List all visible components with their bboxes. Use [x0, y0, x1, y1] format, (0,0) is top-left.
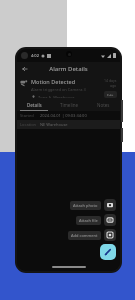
staticText: Location	[20, 122, 40, 127]
staticText: 14 days	[104, 78, 117, 83]
staticText: ago	[110, 83, 117, 88]
button[interactable]: Back	[20, 64, 30, 74]
staticText: Details	[27, 102, 42, 108]
staticText: Alarm Details	[49, 65, 88, 73]
button[interactable]: Timeline	[52, 100, 86, 110]
button[interactable]: Attach photo	[70, 199, 116, 211]
button[interactable]: Add comment	[68, 229, 116, 241]
staticText: Notes	[97, 102, 110, 108]
staticText: Attach file	[79, 218, 98, 223]
staticText: Edit	[107, 93, 114, 96]
staticText: 2024-04-01 | 09:03:34:00	[40, 113, 87, 118]
staticText: Zone A, Warehouse	[38, 95, 75, 98]
staticText: Timeline	[60, 102, 79, 108]
button[interactable]: Edit	[100, 244, 116, 260]
button[interactable]: Motion Detected	[17, 76, 120, 100]
button[interactable]: Location	[17, 120, 120, 129]
button[interactable]: Details	[17, 100, 52, 110]
staticText: Started	[20, 113, 40, 118]
staticText: Alarm triggered on Camera 3	[31, 87, 86, 92]
staticText: Attach photo	[73, 203, 98, 208]
button[interactable]: Started	[17, 111, 120, 120]
button[interactable]: Notes	[86, 100, 120, 110]
staticText: NE Warehouse	[40, 122, 68, 127]
button[interactable]: Edit	[104, 91, 117, 98]
staticText: Motion Detected	[31, 78, 76, 85]
staticText: Add comment	[71, 233, 98, 238]
staticText: 4:02	[31, 53, 39, 58]
button[interactable]: Attach file	[76, 214, 116, 226]
